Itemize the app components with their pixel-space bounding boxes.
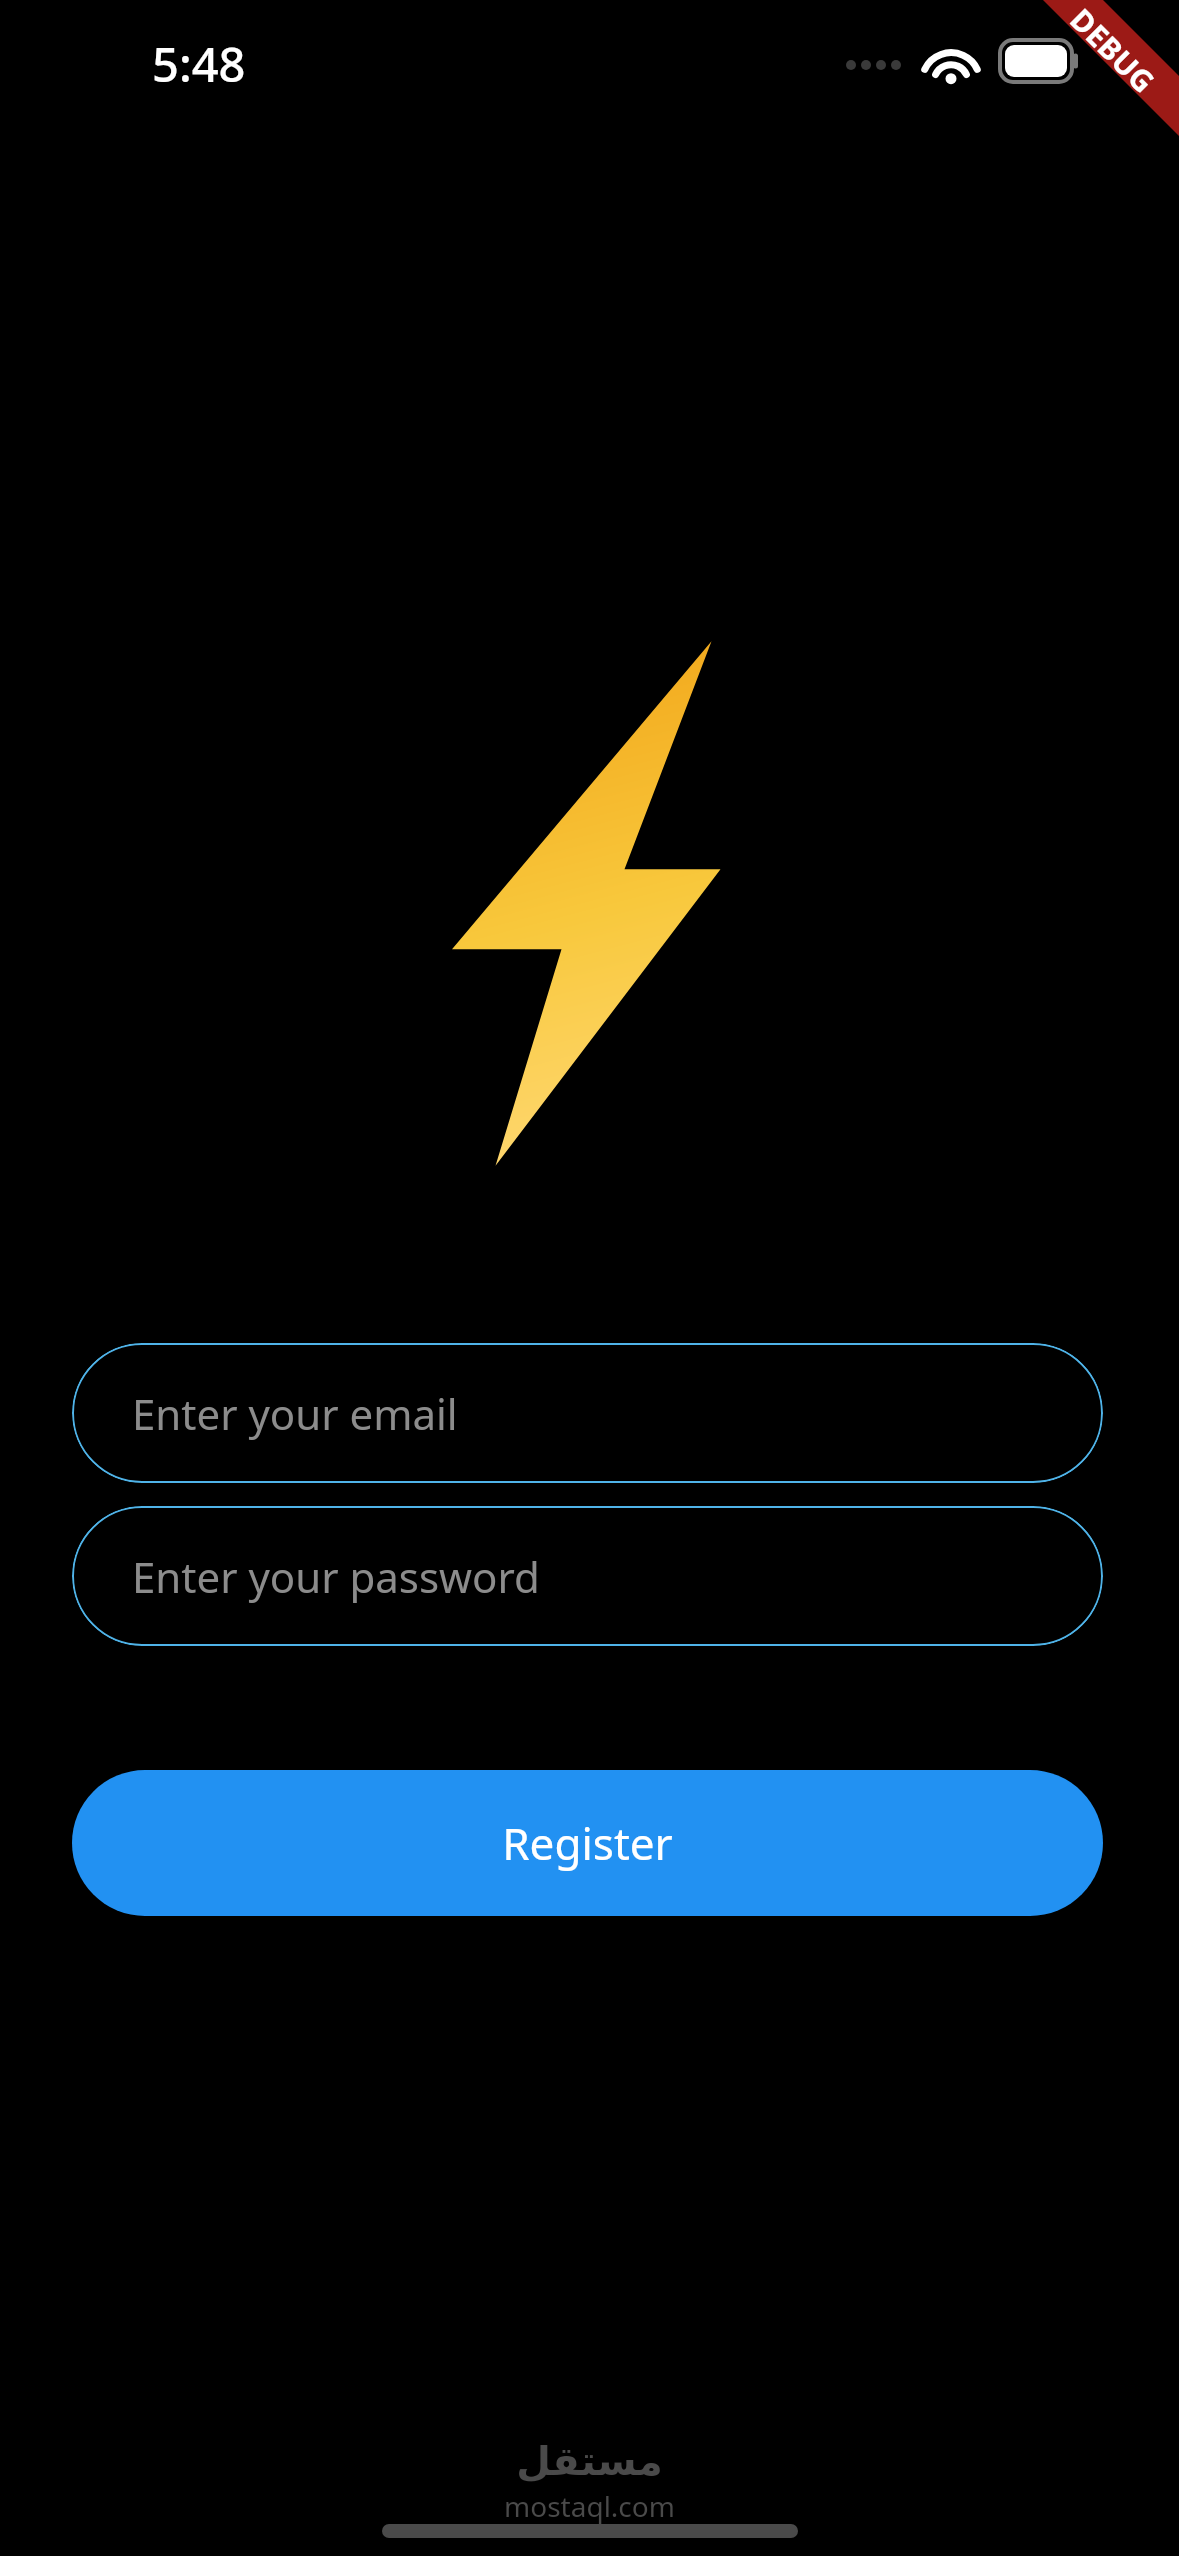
staticText: mostaql.com <box>504 2487 675 2525</box>
staticText: Enter your password <box>132 1548 540 1605</box>
button[interactable]: Register <box>72 1770 1103 1916</box>
button[interactable]: Password input field <box>72 1506 1103 1646</box>
button[interactable]: Email input field <box>72 1343 1103 1483</box>
staticText: 5:48 <box>152 32 246 96</box>
staticText: DEBUG <box>1062 0 1164 102</box>
staticText: Enter your email <box>132 1385 458 1442</box>
staticText: Register <box>502 1813 673 1873</box>
staticText: مستقل <box>516 2438 663 2485</box>
